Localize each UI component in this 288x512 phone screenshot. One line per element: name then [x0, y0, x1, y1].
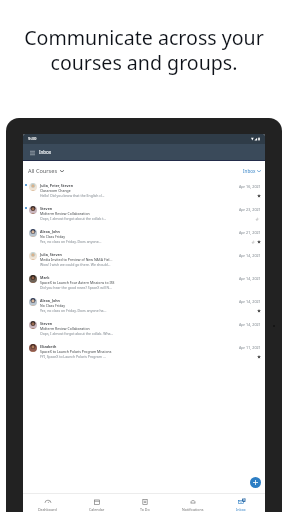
- staticText: Yes, no class on Friday. Does anyone ha.…: [40, 308, 107, 313]
- staticText: Apr 14, 2021: [239, 253, 261, 258]
- button[interactable]: Mark: [23, 269, 265, 292]
- button[interactable]: To Do: [121, 496, 169, 512]
- staticText: Inbox: [39, 149, 52, 155]
- staticText: Midterm Review Collaboration: [40, 326, 90, 331]
- staticText: FYI, SpaceX to Launch Polaris Program ..…: [40, 354, 106, 359]
- staticText: No Class Friday: [40, 234, 66, 239]
- staticText: Apr 16, 2021: [239, 184, 261, 189]
- staticText: To Do: [140, 507, 150, 512]
- button[interactable]: Notifications: [169, 496, 217, 512]
- button[interactable]: Dashboard: [23, 496, 72, 512]
- staticText: Steven: [40, 321, 53, 326]
- button[interactable]: Steven: [23, 200, 265, 223]
- staticText: 10: [243, 498, 246, 502]
- staticText: Wow! I wish we could go there. We should…: [40, 262, 111, 267]
- staticText: Alexa, John: [40, 229, 60, 234]
- staticText: Yes, no class on Friday. Does anyone...: [40, 239, 102, 244]
- staticText: Calendar: [89, 507, 105, 512]
- staticText: 9:30: [28, 136, 37, 142]
- staticText: Steven: [40, 206, 53, 211]
- staticText: Apr 11, 2021: [239, 345, 261, 350]
- staticText: Alexa, John: [40, 298, 60, 303]
- button[interactable]: Alexa, John: [23, 292, 265, 315]
- button[interactable]: Elizabeth: [23, 338, 265, 361]
- staticText: Mark: [40, 275, 50, 280]
- staticText: SpaceX to Launch Four Astern Missions to…: [40, 280, 115, 285]
- staticText: Julia, Peter, Steven: [40, 183, 73, 188]
- staticText: Communicate across your courses and grou…: [24, 24, 264, 75]
- staticText: Julia, Steven: [40, 252, 62, 257]
- button[interactable]: Inbox: [243, 168, 261, 174]
- staticText: Notifications: [182, 507, 204, 512]
- staticText: Classroom Change: [40, 188, 71, 193]
- staticText: Apr 14, 2021: [239, 299, 261, 304]
- staticText: Apr 14, 2021: [239, 322, 261, 327]
- staticText: Elizabeth: [40, 344, 57, 349]
- button[interactable]: 10: [217, 496, 265, 512]
- button[interactable]: Compose new message: [250, 477, 261, 488]
- button[interactable]: Julia, Steven: [23, 246, 265, 269]
- staticText: Inbox: [236, 507, 246, 512]
- staticText: Inbox: [243, 168, 256, 174]
- staticText: No Class Friday: [40, 303, 66, 308]
- staticText: SpaceX to Launch Polaris Program Mission…: [40, 349, 112, 354]
- staticText: Apr 14, 2021: [239, 276, 261, 281]
- staticText: Did you hear the good news? SpaceX will …: [40, 285, 112, 290]
- staticText: Hello! Did you know that the English cl.…: [40, 193, 105, 198]
- button[interactable]: Alexa, John: [23, 223, 265, 246]
- staticText: Media Invited to Preview of New NASA Fie…: [40, 257, 113, 262]
- staticText: Oops, I almost forgot about the collab t…: [40, 216, 107, 221]
- staticText: Oops, I almost forgot about the collab. …: [40, 331, 114, 336]
- button[interactable]: Steven: [23, 315, 265, 338]
- staticText: All Courses: [28, 167, 58, 175]
- staticText: Apr 21, 2021: [239, 230, 261, 235]
- staticText: Dashboard: [38, 507, 57, 512]
- staticText: Midterm Review Collaboration: [40, 211, 90, 216]
- button[interactable]: Julia, Peter, Steven: [23, 177, 265, 200]
- button[interactable]: Calendar: [72, 496, 121, 512]
- button[interactable]: All Courses: [28, 167, 64, 175]
- staticText: Apr 23, 2021: [239, 207, 261, 212]
- button[interactable]: Open navigation menu: [28, 148, 37, 157]
